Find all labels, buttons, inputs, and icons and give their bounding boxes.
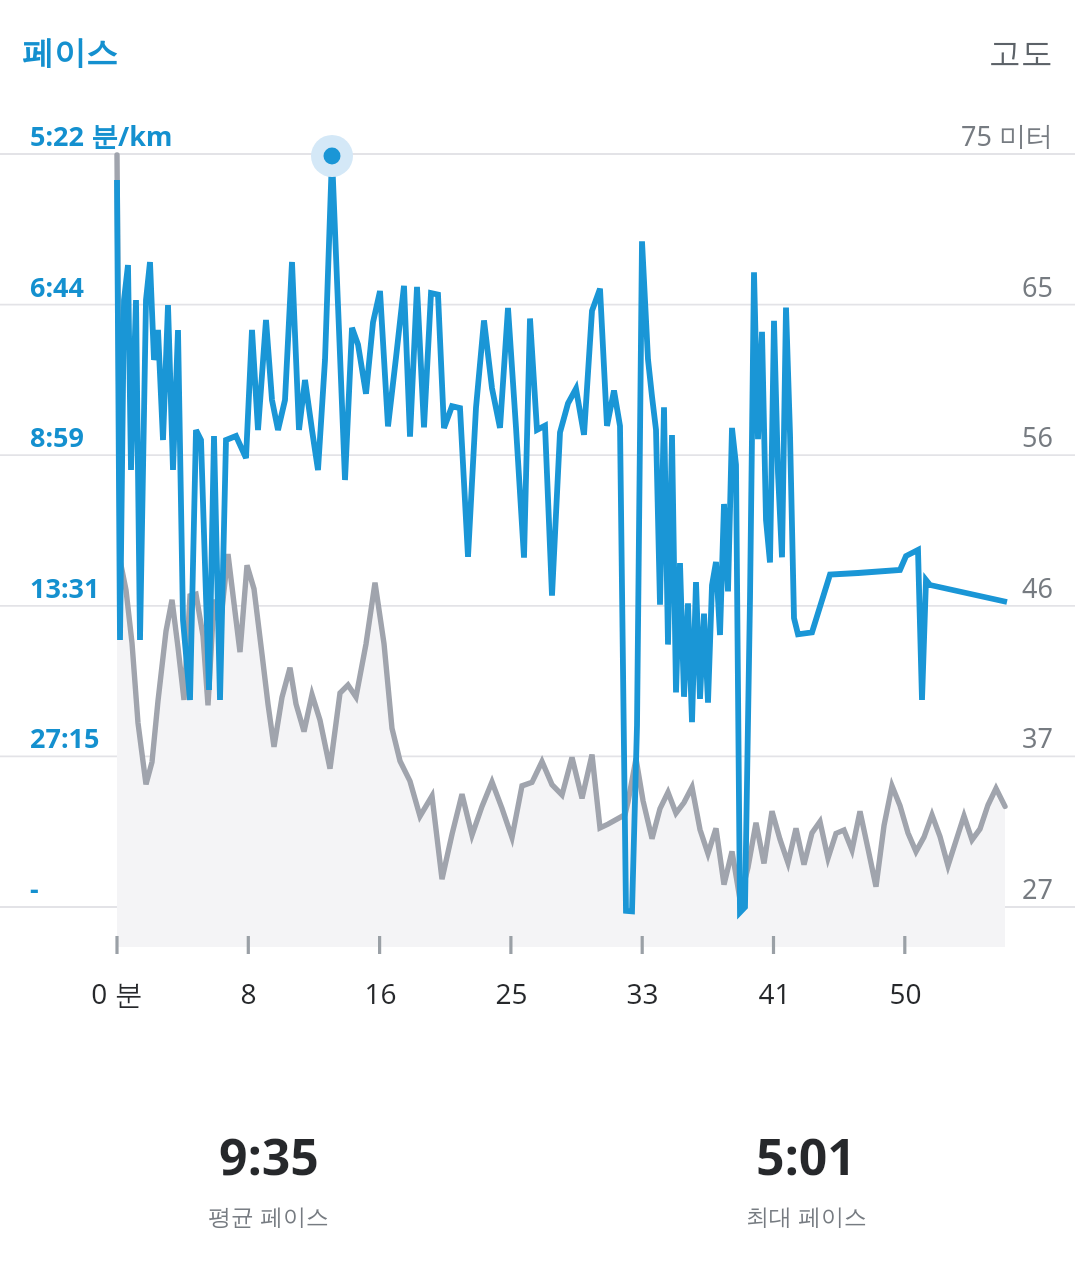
button[interactable]: 5:01 (537, 1122, 1075, 1231)
staticText: 27 (1022, 870, 1053, 907)
button[interactable]: 9:35 (0, 1122, 537, 1231)
staticText: 56 (1022, 418, 1053, 455)
staticText: 16 (364, 974, 397, 1012)
button[interactable]: 고도 (989, 33, 1053, 73)
staticText: 6:44 (30, 268, 84, 305)
staticText: 33 (626, 974, 659, 1012)
staticText: 37 (1022, 719, 1053, 756)
staticText: 8 (240, 974, 257, 1012)
staticText: 25 (495, 974, 528, 1012)
staticText: 5:22 분/km (30, 117, 173, 154)
staticText: 페이스 (22, 33, 118, 73)
staticText: 75 미터 (961, 117, 1053, 154)
staticText: - (30, 870, 39, 907)
staticText: 65 (1022, 268, 1053, 305)
staticText: 고도 (989, 33, 1053, 73)
staticText: 41 (758, 974, 791, 1012)
staticText: 50 (889, 974, 922, 1012)
staticText: 0 분 (91, 974, 143, 1012)
staticText: 46 (1022, 569, 1053, 606)
staticText: 최대 페이스 (746, 1200, 867, 1231)
staticText: 27:15 (30, 719, 100, 756)
staticText: 9:35 (219, 1122, 319, 1190)
other: Pace and elevation chart (0, 0, 1075, 1270)
staticText: 5:01 (756, 1122, 856, 1190)
button[interactable]: 페이스 (22, 33, 118, 73)
staticText: 8:59 (30, 418, 84, 455)
staticText: 평균 페이스 (208, 1200, 329, 1231)
staticText: 13:31 (30, 569, 100, 606)
